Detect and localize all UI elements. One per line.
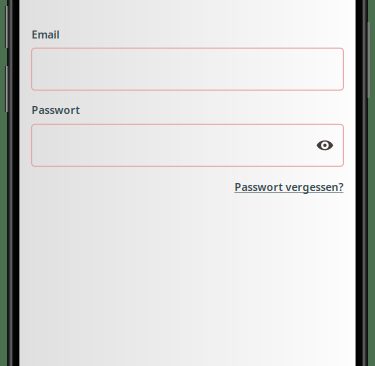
button[interactable]: Show password bbox=[316, 125, 343, 165]
staticText: Passwort vergessen? bbox=[234, 180, 343, 194]
staticText: Passwort bbox=[32, 103, 80, 117]
staticText: Email bbox=[32, 27, 60, 42]
button[interactable]: Passwort vergessen? bbox=[234, 180, 343, 194]
